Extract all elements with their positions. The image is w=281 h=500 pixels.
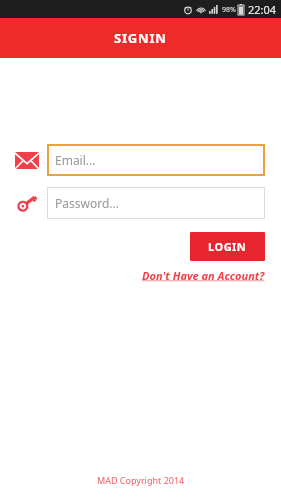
button[interactable]: LOGIN bbox=[190, 232, 265, 261]
staticText: Email... bbox=[55, 152, 96, 168]
other: Password bbox=[14, 190, 40, 216]
other: Email bbox=[15, 152, 39, 169]
button[interactable]: Email... bbox=[47, 144, 265, 176]
button[interactable]: Don't Have an Account? bbox=[142, 268, 265, 283]
staticText: MAD Copyright 2014 bbox=[97, 474, 185, 486]
staticText: Don't Have an Account? bbox=[142, 268, 265, 283]
staticText: 98% bbox=[222, 5, 236, 15]
staticText: SIGNIN bbox=[114, 29, 167, 47]
button[interactable]: Password... bbox=[47, 187, 265, 219]
staticText: Password... bbox=[55, 195, 119, 211]
staticText: LOGIN bbox=[208, 239, 247, 254]
staticText: 22:04 bbox=[248, 2, 277, 17]
